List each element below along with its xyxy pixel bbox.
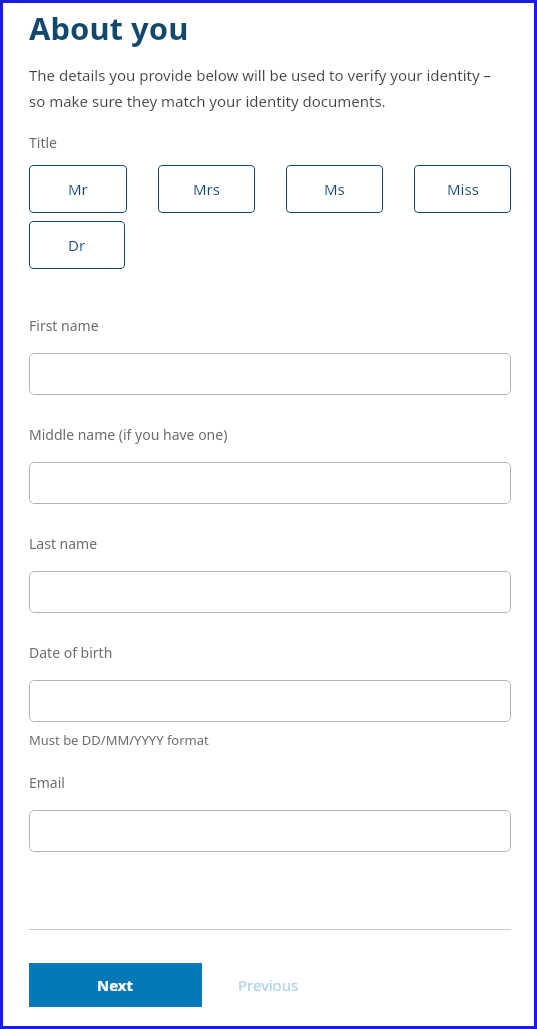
button[interactable] [29,810,511,852]
staticText: Title [29,133,57,152]
staticText: Dr [68,235,86,255]
button[interactable] [29,680,511,722]
staticText: Ms [324,179,345,199]
staticText: Mr [68,179,88,199]
staticText: Email [29,773,65,792]
button[interactable]: Dr [29,221,125,269]
staticText: About you [29,7,189,49]
button[interactable] [29,353,511,395]
staticText: Next [97,975,134,995]
button[interactable] [29,571,511,613]
staticText: Miss [447,179,479,199]
staticText: Middle name (if you have one) [29,425,228,444]
staticText: Date of birth [29,643,113,662]
button[interactable] [29,462,511,504]
staticText: The details you provide below will be us… [29,65,511,112]
staticText: Mrs [193,179,220,199]
button[interactable]: Previous [202,963,335,1007]
staticText: Previous [238,975,299,995]
staticText: Last name [29,534,98,553]
button[interactable]: Mr [29,165,127,213]
button[interactable]: Miss [414,165,511,213]
staticText: Must be DD/MM/YYYY format [29,731,209,749]
button[interactable]: Ms [286,165,383,213]
button[interactable]: Mrs [158,165,255,213]
button[interactable]: Next [29,963,202,1007]
staticText: First name [29,316,99,335]
